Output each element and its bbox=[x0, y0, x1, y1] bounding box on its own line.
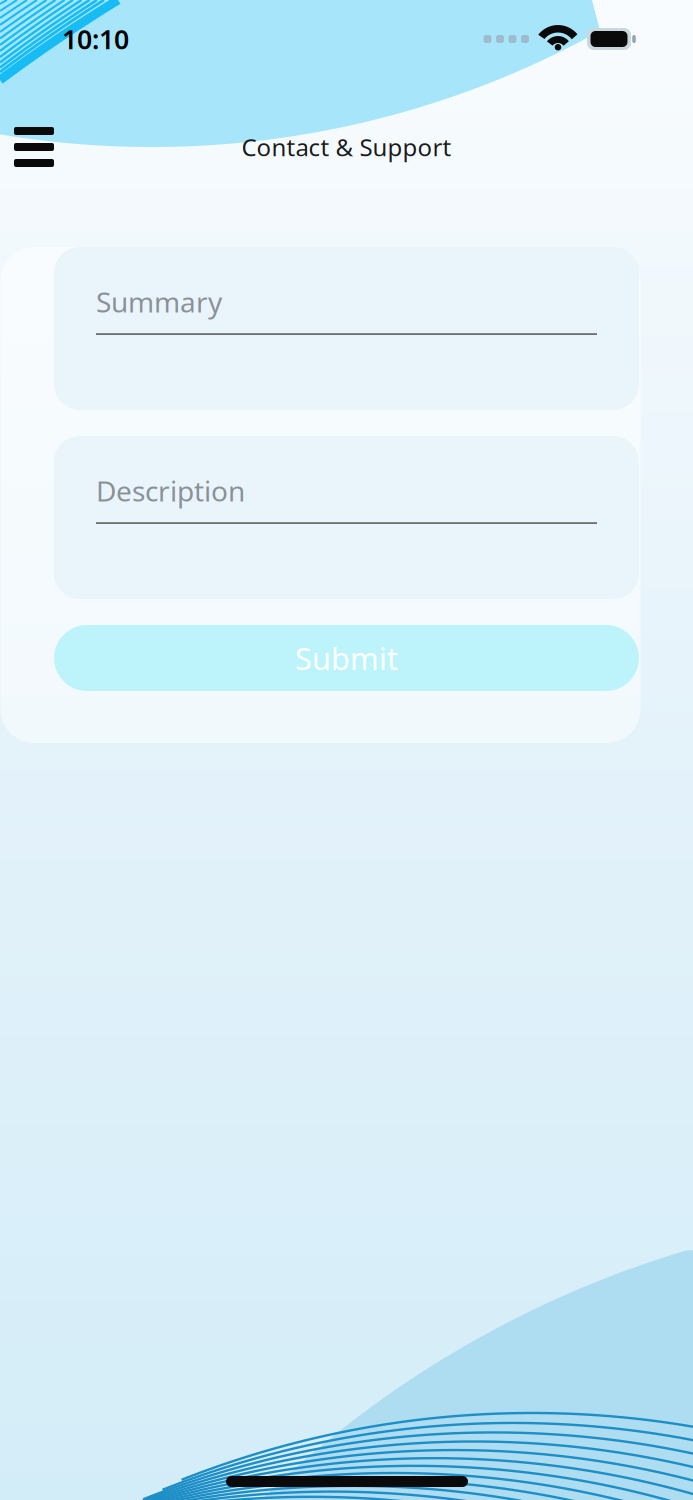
staticText: Description bbox=[96, 472, 245, 509]
button[interactable]: Menu bbox=[6, 119, 62, 175]
button[interactable]: Submit bbox=[54, 625, 639, 691]
staticText: 10:10 bbox=[62, 21, 129, 57]
staticText: Summary bbox=[96, 283, 222, 320]
staticText: Submit bbox=[295, 638, 398, 678]
staticText: Contact & Support bbox=[241, 131, 451, 163]
